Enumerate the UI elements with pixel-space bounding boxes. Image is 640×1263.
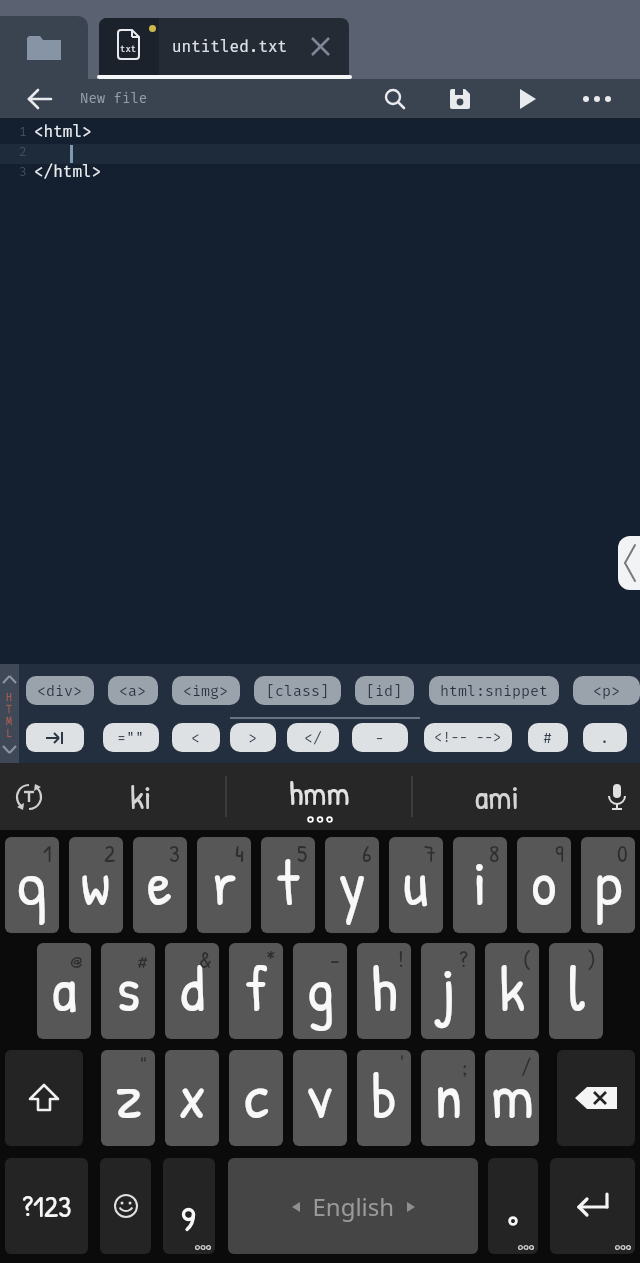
button[interactable]: e	[133, 837, 187, 933]
button[interactable]: c	[229, 1050, 283, 1146]
button[interactable]: a	[37, 943, 91, 1039]
staticText: [id]	[366, 682, 403, 700]
button[interactable]: g	[293, 943, 347, 1039]
staticText: z	[115, 1052, 142, 1137]
button[interactable]: >	[230, 723, 276, 752]
button[interactable]: v	[293, 1050, 347, 1146]
button[interactable]	[575, 79, 619, 118]
button[interactable]: .	[583, 723, 627, 752]
staticText: )	[587, 943, 596, 975]
button[interactable]: b	[357, 1050, 411, 1146]
staticText: 5	[297, 837, 308, 869]
button[interactable]: r	[197, 837, 251, 933]
button[interactable]: f	[229, 943, 283, 1039]
staticText: English	[300, 1190, 407, 1223]
staticText: r	[212, 839, 237, 924]
button[interactable]: html:snippet	[429, 676, 559, 705]
button[interactable]: ki	[56, 763, 225, 830]
button[interactable]: x	[165, 1050, 219, 1146]
button[interactable]: <img>	[172, 676, 240, 705]
button[interactable]: s	[101, 943, 155, 1039]
button[interactable]	[373, 79, 417, 118]
button[interactable]	[5, 1050, 83, 1146]
staticText: ?123	[22, 1186, 72, 1227]
button[interactable]: t	[261, 837, 315, 933]
staticText: [class]	[266, 682, 330, 700]
staticText: New file	[80, 90, 148, 107]
staticText: y	[339, 839, 366, 924]
staticText: 9	[555, 837, 564, 869]
staticText: n	[434, 1052, 463, 1137]
staticText: 3	[169, 837, 180, 869]
button[interactable]: q	[5, 837, 59, 933]
button[interactable]: o	[517, 837, 571, 933]
staticText: 7	[424, 837, 436, 869]
button[interactable]: <a>	[108, 676, 158, 705]
button[interactable]	[550, 1158, 635, 1254]
staticText: 1	[19, 124, 27, 140]
button[interactable]: <!-- -->	[424, 723, 512, 752]
staticText: 3	[19, 164, 27, 180]
button[interactable]: <	[172, 723, 220, 752]
staticText: p	[595, 839, 622, 924]
staticText: </html>	[34, 162, 102, 181]
staticText: g	[306, 945, 335, 1030]
button[interactable]: u	[389, 837, 443, 933]
button[interactable]: </	[287, 723, 339, 752]
button[interactable]	[618, 536, 640, 590]
staticText: v	[307, 1052, 333, 1137]
staticText: H	[6, 692, 12, 704]
button[interactable]	[163, 1158, 215, 1254]
button[interactable]: k	[485, 943, 539, 1039]
button[interactable]: n	[421, 1050, 475, 1146]
staticText: #	[543, 729, 553, 747]
staticText: ?	[459, 943, 468, 975]
button[interactable]: p	[581, 837, 635, 933]
button[interactable]: ami	[413, 763, 582, 830]
button[interactable]: m	[485, 1050, 539, 1146]
staticText: 1	[43, 837, 52, 869]
button[interactable]	[557, 1050, 635, 1146]
button[interactable]: English	[228, 1158, 478, 1254]
button[interactable]	[488, 1158, 538, 1254]
button[interactable]	[506, 79, 550, 118]
staticText: (	[523, 943, 532, 975]
button[interactable]	[438, 79, 482, 118]
button[interactable]: y	[325, 837, 379, 933]
button[interactable]: =""	[103, 723, 159, 752]
button[interactable]: [class]	[254, 676, 341, 705]
staticText: w	[81, 839, 111, 924]
button[interactable]: i	[453, 837, 507, 933]
button[interactable]	[26, 723, 84, 752]
button[interactable]: j	[421, 943, 475, 1039]
button[interactable]: l	[549, 943, 603, 1039]
staticText: l	[568, 945, 585, 1030]
staticText: L	[6, 728, 12, 740]
button[interactable]: [id]	[355, 676, 414, 705]
button[interactable]: hmm	[227, 763, 411, 830]
button[interactable]: z	[101, 1050, 155, 1146]
button[interactable]: <div>	[26, 676, 94, 705]
button[interactable]	[18, 79, 62, 118]
button[interactable]: <p>	[573, 676, 640, 705]
staticText: 2	[104, 837, 116, 869]
button[interactable]: ?123	[5, 1158, 88, 1254]
staticText: 2	[19, 144, 27, 160]
button[interactable]: txt	[99, 18, 349, 75]
button[interactable]: h	[357, 943, 411, 1039]
button[interactable]: -	[352, 723, 408, 752]
button[interactable]: w	[69, 837, 123, 933]
button[interactable]	[594, 763, 640, 830]
staticText: -	[330, 943, 340, 975]
button[interactable]	[0, 16, 88, 79]
button[interactable]	[100, 1158, 151, 1254]
staticText: !	[398, 943, 404, 975]
button[interactable]: #	[528, 723, 568, 752]
staticText: .	[600, 729, 610, 747]
button[interactable]: d	[165, 943, 219, 1039]
staticText: j	[441, 945, 456, 1030]
staticText: >	[248, 729, 258, 747]
staticText: h	[371, 945, 398, 1030]
staticText: s	[116, 945, 141, 1030]
button[interactable]	[6, 763, 52, 830]
